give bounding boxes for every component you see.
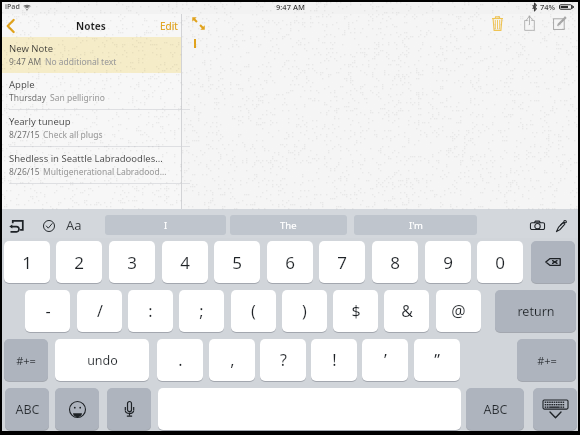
staticText: ? xyxy=(280,349,287,371)
staticText: 8/27/15 xyxy=(9,129,40,141)
button[interactable]: 6 xyxy=(267,241,313,283)
staticText: . xyxy=(178,349,183,371)
button[interactable]: ABC xyxy=(5,388,49,430)
button[interactable]: ! xyxy=(311,339,357,381)
staticText: 0 xyxy=(495,251,505,274)
button[interactable]: Backspace xyxy=(531,241,575,283)
staticText: #+= xyxy=(537,353,557,368)
staticText: 1 xyxy=(22,251,32,274)
button[interactable]: Apple xyxy=(0,73,181,110)
staticText: 9:47 AM xyxy=(9,56,42,68)
button[interactable]: Yearly tuneup xyxy=(0,110,181,147)
staticText: 2 xyxy=(74,251,84,274)
button[interactable]: ABC xyxy=(466,388,524,430)
button[interactable]: New Note xyxy=(0,37,181,73)
staticText: , xyxy=(230,349,235,371)
staticText: Aa xyxy=(66,216,82,234)
button[interactable]: - xyxy=(25,290,70,332)
button[interactable]: : xyxy=(128,290,173,332)
staticText: Yearly tuneup xyxy=(9,115,71,128)
button[interactable]: Camera xyxy=(529,219,546,232)
button[interactable]: 7 xyxy=(319,241,365,283)
staticText: return xyxy=(517,303,555,320)
button[interactable]: ? xyxy=(260,339,306,381)
staticText: @ xyxy=(451,300,466,322)
staticText: Notes xyxy=(76,19,106,33)
button[interactable]: 5 xyxy=(214,241,260,283)
button[interactable]: , xyxy=(209,339,255,381)
button[interactable]: Delete xyxy=(486,14,508,32)
button[interactable]: Checklist xyxy=(43,220,55,232)
button[interactable]: ” xyxy=(414,339,460,381)
button[interactable]: Back xyxy=(2,14,22,37)
staticText: / xyxy=(97,300,103,322)
button[interactable]: New note xyxy=(549,14,571,32)
staticText: - xyxy=(45,300,51,322)
button[interactable]: Dictate xyxy=(107,388,151,430)
staticText: 9:47 AM xyxy=(276,2,305,12)
button[interactable]: & xyxy=(384,290,429,332)
staticText: Shedless in Seattle Labradoodles… xyxy=(9,152,163,165)
button[interactable]: 8 xyxy=(372,241,418,283)
staticText: Check all plugs xyxy=(43,129,103,141)
button[interactable]: . xyxy=(157,339,203,381)
staticText: iPad xyxy=(5,2,20,12)
button[interactable]: undo xyxy=(55,339,149,381)
button[interactable]: 3 xyxy=(109,241,155,283)
button[interactable]: #+= xyxy=(4,339,48,381)
button[interactable]: Shedless in Seattle Labradoodles… xyxy=(0,147,181,184)
button[interactable]: Undo xyxy=(9,219,24,233)
button[interactable]: $ xyxy=(333,290,378,332)
button[interactable]: The xyxy=(230,215,347,235)
staticText: San pelligrino xyxy=(50,92,105,104)
button[interactable]: ) xyxy=(282,290,327,332)
staticText: $ xyxy=(351,300,361,322)
staticText: & xyxy=(401,300,413,322)
staticText: 5 xyxy=(232,251,242,274)
staticText: Edit xyxy=(160,19,178,33)
button[interactable]: I'm xyxy=(354,215,477,235)
staticText: The xyxy=(280,219,297,232)
button[interactable]: I xyxy=(105,215,226,235)
button[interactable]: return xyxy=(495,290,576,332)
button[interactable]: Edit xyxy=(160,14,178,37)
staticText: 4 xyxy=(180,251,190,274)
button[interactable]: Hide keyboard xyxy=(533,388,577,430)
staticText: I'm xyxy=(409,219,423,232)
button[interactable]: 0 xyxy=(477,241,523,283)
staticText: : xyxy=(148,300,153,322)
staticText: ABC xyxy=(483,401,508,418)
staticText: ” xyxy=(434,349,440,371)
staticText: ; xyxy=(199,300,204,322)
staticText: 8 xyxy=(390,251,400,274)
staticText: Apple xyxy=(9,78,35,91)
button[interactable]: Expand note xyxy=(190,15,206,31)
button[interactable]: Emoji xyxy=(55,388,99,430)
staticText: undo xyxy=(87,352,118,369)
staticText: ’ xyxy=(384,349,387,371)
staticText: #+= xyxy=(16,353,36,368)
button[interactable]: Handwriting xyxy=(554,219,569,232)
button[interactable]: 2 xyxy=(56,241,102,283)
button[interactable]: 1 xyxy=(4,241,50,283)
button[interactable]: #+= xyxy=(517,339,576,381)
staticText: 7 xyxy=(337,251,347,274)
button[interactable]: 9 xyxy=(425,241,471,283)
button[interactable]: Aa xyxy=(66,216,82,234)
button[interactable]: Share xyxy=(518,14,540,32)
button[interactable]: ( xyxy=(231,290,276,332)
button[interactable]: @ xyxy=(436,290,481,332)
staticText: ! xyxy=(332,349,337,371)
staticText: 6 xyxy=(285,251,295,274)
staticText: 74% xyxy=(540,2,556,12)
staticText: 3 xyxy=(127,251,137,274)
button[interactable]: 4 xyxy=(162,241,208,283)
staticText: Thursday xyxy=(9,92,47,104)
button[interactable]: ’ xyxy=(362,339,408,381)
button[interactable]: ; xyxy=(179,290,224,332)
staticText: ( xyxy=(251,300,256,322)
button[interactable]: / xyxy=(77,290,122,332)
staticText: New Note xyxy=(9,42,54,55)
staticText: ) xyxy=(302,300,307,322)
